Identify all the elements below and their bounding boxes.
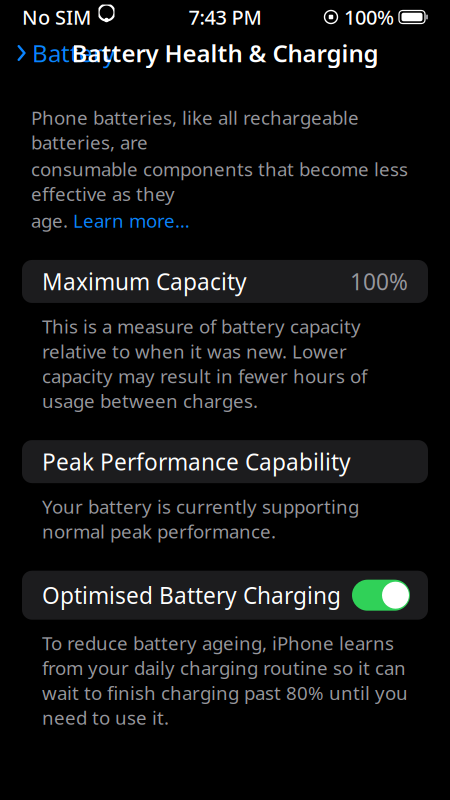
staticText: 100% xyxy=(350,266,408,296)
button[interactable]: Optimised Battery Charging toggle, on xyxy=(352,580,410,611)
staticText: Battery xyxy=(32,37,115,69)
button[interactable]: Learn more… xyxy=(73,208,190,233)
staticText: This is a measure of battery capacity re… xyxy=(42,314,367,413)
button[interactable]: Battery xyxy=(0,31,115,75)
staticText: Phone batteries, like all rechargeable b… xyxy=(31,105,359,155)
staticText: To reduce battery ageing, iPhone learns … xyxy=(42,631,408,730)
staticText: No SIM xyxy=(22,4,91,30)
staticText: age. xyxy=(31,208,73,233)
staticText: Maximum Capacity xyxy=(42,266,247,296)
staticText: Your battery is currently supporting nor… xyxy=(42,494,359,544)
staticText: Peak Performance Capability xyxy=(42,447,351,477)
staticText: 7:43 PM xyxy=(188,4,261,30)
staticText: Learn more… xyxy=(73,208,190,233)
staticText: Battery Health & Charging xyxy=(71,37,378,69)
staticText: consumable components that become less e… xyxy=(31,157,408,206)
staticText: Optimised Battery Charging xyxy=(42,580,341,610)
staticText: 100% xyxy=(344,4,394,30)
